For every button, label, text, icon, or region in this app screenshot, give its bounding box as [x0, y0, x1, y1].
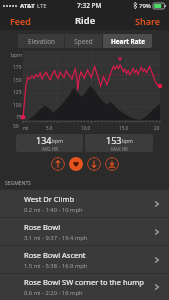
staticText: 3.1 mi - 9:37 - 19.4 mph: [24, 234, 88, 242]
staticText: 0.2 mi - 1:40 - 10 mph: [24, 206, 83, 214]
staticText: SEGMENTS: [5, 180, 31, 187]
staticText: mi: [23, 125, 29, 131]
staticText: Speed: [74, 37, 93, 46]
staticText: West Dr Climb: [24, 194, 75, 204]
staticText: 20: [154, 125, 160, 131]
staticText: MAX HR: [111, 146, 128, 152]
staticText: 10.0: [81, 125, 91, 131]
staticText: Ride: [75, 14, 96, 27]
staticText: 150: [13, 77, 22, 84]
button[interactable]: Speed metric: [87, 157, 101, 171]
staticText: Rose Bowl SW corner to the hump: [24, 277, 144, 287]
staticText: Elevation: [28, 37, 55, 46]
staticText: 0.6 mi - 2:20 - 16 mph: [24, 289, 83, 297]
button[interactable]: Rose Bowl SW corner to the hump: [0, 274, 169, 300]
staticText: LTE: [37, 2, 47, 10]
staticText: Feed: [10, 15, 32, 27]
staticText: 134: [36, 134, 52, 146]
staticText: Rose Bowl: [24, 222, 61, 232]
staticText: 100: [13, 102, 22, 109]
staticText: 50: [13, 123, 19, 130]
staticText: bpm: [11, 52, 22, 59]
button[interactable]: West Dr Climb: [0, 190, 169, 217]
button[interactable]: Share: [113, 11, 169, 30]
button[interactable]: Power metric: [105, 157, 119, 171]
staticText: Heart Rate: [111, 37, 145, 46]
button[interactable]: Elevation: [18, 34, 64, 48]
button[interactable]: 134: [16, 134, 83, 152]
button[interactable]: Heart Rate: [103, 34, 152, 48]
staticText: 15.0: [119, 125, 129, 131]
button[interactable]: 153: [85, 134, 153, 152]
staticText: 5.0: [46, 125, 53, 131]
staticText: 7:32 PM: [77, 1, 102, 10]
staticText: bpm: [122, 138, 133, 145]
staticText: 125: [13, 89, 22, 96]
staticText: Share: [135, 15, 160, 27]
button[interactable]: Elevation metric: [51, 157, 65, 171]
staticText: AT&T: [20, 2, 35, 10]
button[interactable]: Rose Bowl: [0, 218, 169, 245]
button[interactable]: Speed: [65, 34, 102, 48]
staticText: 75: [16, 114, 22, 121]
button[interactable]: Feed: [0, 11, 57, 30]
button[interactable]: Rose Bowl Ascent: [0, 246, 169, 273]
staticText: 1.5 mi - 5:38 - 16.9 mph: [24, 262, 88, 270]
staticText: 175: [13, 64, 22, 71]
staticText: 153: [106, 134, 122, 146]
staticText: Rose Bowl Ascent: [24, 250, 86, 260]
staticText: bpm: [52, 138, 63, 145]
button[interactable]: Heart rate metric: [69, 157, 83, 171]
staticText: 79%: [139, 2, 151, 10]
staticText: AVG HR: [42, 146, 58, 152]
